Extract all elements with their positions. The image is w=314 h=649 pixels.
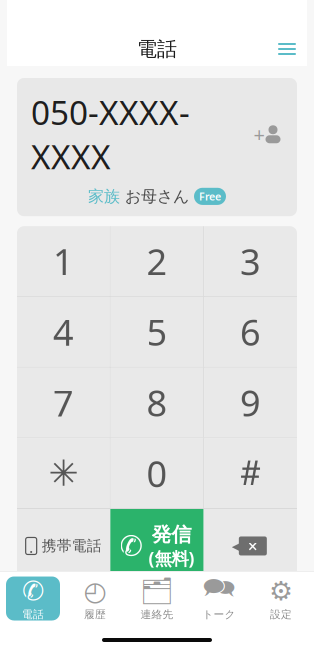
staticText: ✳	[48, 453, 78, 494]
staticText: お母さん	[125, 186, 189, 206]
button[interactable]: 🗪	[192, 576, 246, 620]
staticText: (無料)	[148, 547, 194, 570]
staticText: 家族	[88, 186, 120, 206]
button[interactable]: メニュー	[267, 32, 307, 66]
staticText: ×	[248, 534, 258, 557]
button[interactable]: 3	[204, 226, 297, 296]
staticText: 🗂	[140, 576, 174, 606]
staticText: ◴	[83, 576, 106, 606]
button[interactable]: ＃	[204, 438, 297, 508]
staticText: 5	[146, 308, 167, 356]
button[interactable]: 7	[17, 368, 110, 438]
staticText: 1	[53, 237, 74, 285]
staticText: 履歴	[84, 608, 106, 621]
staticText: 設定	[270, 608, 292, 621]
button[interactable]: ⚙	[254, 576, 308, 620]
button[interactable]: 🗂	[130, 576, 184, 620]
staticText: 9	[240, 379, 261, 426]
button[interactable]: 4	[17, 297, 110, 367]
button[interactable]: 2	[111, 226, 203, 296]
staticText: 🗪	[202, 569, 235, 613]
button[interactable]: ✳	[17, 438, 110, 508]
staticText: 電話	[22, 608, 44, 621]
staticText: ＃	[233, 451, 269, 495]
staticText: 8	[146, 379, 167, 426]
button[interactable]: 連絡先に追加	[251, 121, 283, 147]
staticText: ✆	[119, 530, 142, 562]
staticText: ✆	[22, 576, 44, 606]
button[interactable]: 5	[111, 297, 203, 367]
staticText: 6	[240, 308, 261, 356]
button[interactable]: 1	[17, 226, 110, 296]
staticText: ◀	[232, 538, 243, 554]
button[interactable]: 携帯電話	[17, 509, 110, 583]
staticText: 7	[53, 379, 74, 426]
staticText: 連絡先	[140, 608, 173, 621]
staticText: 携帯電話	[42, 537, 102, 555]
button[interactable]: 9	[204, 368, 297, 438]
staticText: トーク	[202, 608, 235, 621]
button[interactable]: 0	[111, 438, 203, 508]
staticText: 発信	[151, 522, 191, 547]
staticText: 電話	[137, 37, 177, 61]
button[interactable]: 8	[111, 368, 203, 438]
staticText: ⚙	[269, 576, 293, 606]
button[interactable]: ◴	[68, 576, 122, 620]
staticText: +	[253, 121, 264, 148]
staticText: Free	[199, 189, 221, 203]
staticText: 4	[53, 308, 74, 356]
staticText: 2	[146, 237, 167, 285]
button[interactable]: ✆	[6, 576, 60, 620]
staticText: 0	[146, 449, 167, 497]
button[interactable]: ✆	[110, 509, 204, 583]
button[interactable]: 削除	[204, 509, 297, 583]
staticText: 050-XXXX-XXXX	[31, 90, 190, 178]
staticText: 3	[240, 237, 261, 285]
button[interactable]: 6	[204, 297, 297, 367]
